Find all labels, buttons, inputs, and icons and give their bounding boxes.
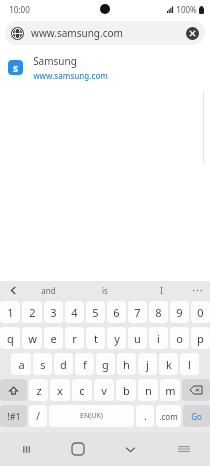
- other: Site info: [11, 27, 24, 40]
- staticText: 7: [134, 305, 141, 320]
- staticText: 100%: [176, 4, 197, 15]
- button[interactable]: S: [0, 48, 210, 87]
- staticText: z: [36, 383, 42, 398]
- staticText: h: [123, 357, 130, 372]
- staticText: g: [102, 357, 109, 372]
- staticText: y: [114, 331, 120, 346]
- button[interactable]: j: [138, 353, 157, 375]
- staticText: b: [123, 383, 130, 398]
- button[interactable]: a: [11, 353, 31, 375]
- button[interactable]: w: [22, 327, 42, 349]
- button[interactable]: b: [116, 379, 136, 401]
- staticText: f: [83, 357, 87, 372]
- button[interactable]: p: [191, 327, 210, 349]
- staticText: and: [41, 285, 56, 296]
- button[interactable]: Hide keyboard: [104, 432, 157, 466]
- button[interactable]: Go: [183, 405, 210, 427]
- button[interactable]: r: [65, 327, 84, 349]
- button[interactable]: s: [33, 353, 52, 375]
- staticText: u: [134, 331, 141, 346]
- staticText: 5: [92, 305, 99, 320]
- button[interactable]: t: [86, 327, 105, 349]
- button[interactable]: v: [94, 379, 114, 401]
- button[interactable]: 5: [86, 301, 105, 323]
- button[interactable]: Keyboard layout: [157, 432, 210, 466]
- staticText: 2: [29, 305, 36, 320]
- staticText: j: [146, 357, 149, 372]
- staticText: 8: [155, 305, 162, 320]
- button[interactable]: More options: [190, 283, 204, 297]
- button[interactable]: u: [128, 327, 147, 349]
- button[interactable]: .com: [156, 405, 181, 427]
- button[interactable]: i: [149, 327, 168, 349]
- button[interactable]: Site info: [5, 21, 205, 45]
- staticText: EN(UK): [80, 411, 103, 421]
- staticText: 1: [7, 305, 14, 320]
- button[interactable]: I: [133, 281, 190, 299]
- button[interactable]: m: [160, 379, 180, 401]
- button[interactable]: l: [180, 353, 199, 375]
- staticText: 6: [113, 305, 120, 320]
- button[interactable]: k: [159, 353, 178, 375]
- button[interactable]: Recents: [0, 432, 52, 466]
- button[interactable]: /: [29, 405, 47, 427]
- button[interactable]: Home: [52, 432, 104, 466]
- staticText: Samsung: [33, 54, 77, 68]
- button[interactable]: Backspace: [182, 379, 210, 401]
- button[interactable]: o: [170, 327, 189, 349]
- button[interactable]: n: [138, 379, 158, 401]
- staticText: 0: [197, 305, 204, 320]
- staticText: !#1: [7, 410, 21, 422]
- button[interactable]: q: [0, 327, 20, 349]
- button[interactable]: e: [44, 327, 63, 349]
- button[interactable]: 7: [128, 301, 147, 323]
- staticText: n: [145, 383, 152, 398]
- staticText: a: [18, 357, 25, 372]
- button[interactable]: 4: [65, 301, 84, 323]
- button[interactable]: z: [29, 379, 48, 401]
- button[interactable]: 2: [22, 301, 42, 323]
- staticText: 3: [50, 305, 57, 320]
- staticText: is: [102, 285, 108, 296]
- button[interactable]: 8: [149, 301, 168, 323]
- button[interactable]: Shift: [0, 379, 27, 401]
- staticText: /: [36, 409, 40, 423]
- staticText: k: [166, 357, 172, 372]
- staticText: Go: [191, 411, 202, 422]
- staticText: e: [50, 331, 57, 346]
- staticText: S: [13, 62, 18, 74]
- button[interactable]: x: [50, 379, 70, 401]
- button[interactable]: Clear: [186, 27, 199, 40]
- staticText: I: [160, 285, 163, 296]
- staticText: s: [40, 357, 46, 372]
- button[interactable]: f: [75, 353, 94, 375]
- staticText: q: [7, 331, 14, 346]
- button[interactable]: Previous: [6, 283, 20, 297]
- button[interactable]: EN(UK): [49, 405, 134, 427]
- staticText: ⋯: [192, 284, 203, 297]
- button[interactable]: is: [76, 281, 133, 299]
- staticText: 4: [71, 305, 78, 320]
- staticText: l: [188, 357, 191, 372]
- staticText: i: [157, 331, 160, 346]
- staticText: m: [165, 383, 176, 398]
- button[interactable]: h: [117, 353, 136, 375]
- staticText: .com: [159, 411, 178, 422]
- staticText: www.samsung.com: [31, 26, 123, 40]
- staticText: d: [60, 357, 67, 372]
- staticText: t: [94, 331, 98, 346]
- button[interactable]: and: [20, 281, 76, 299]
- button[interactable]: c: [72, 379, 92, 401]
- button[interactable]: 3: [44, 301, 63, 323]
- staticText: www.samsung.com: [33, 70, 108, 81]
- button[interactable]: !#1: [0, 405, 27, 427]
- button[interactable]: y: [107, 327, 126, 349]
- button[interactable]: .: [136, 405, 154, 427]
- button[interactable]: 6: [107, 301, 126, 323]
- button[interactable]: 0: [191, 301, 210, 323]
- button[interactable]: g: [96, 353, 115, 375]
- button[interactable]: 1: [0, 301, 20, 323]
- button[interactable]: 9: [170, 301, 189, 323]
- staticText: 10:00: [9, 4, 30, 15]
- button[interactable]: d: [54, 353, 73, 375]
